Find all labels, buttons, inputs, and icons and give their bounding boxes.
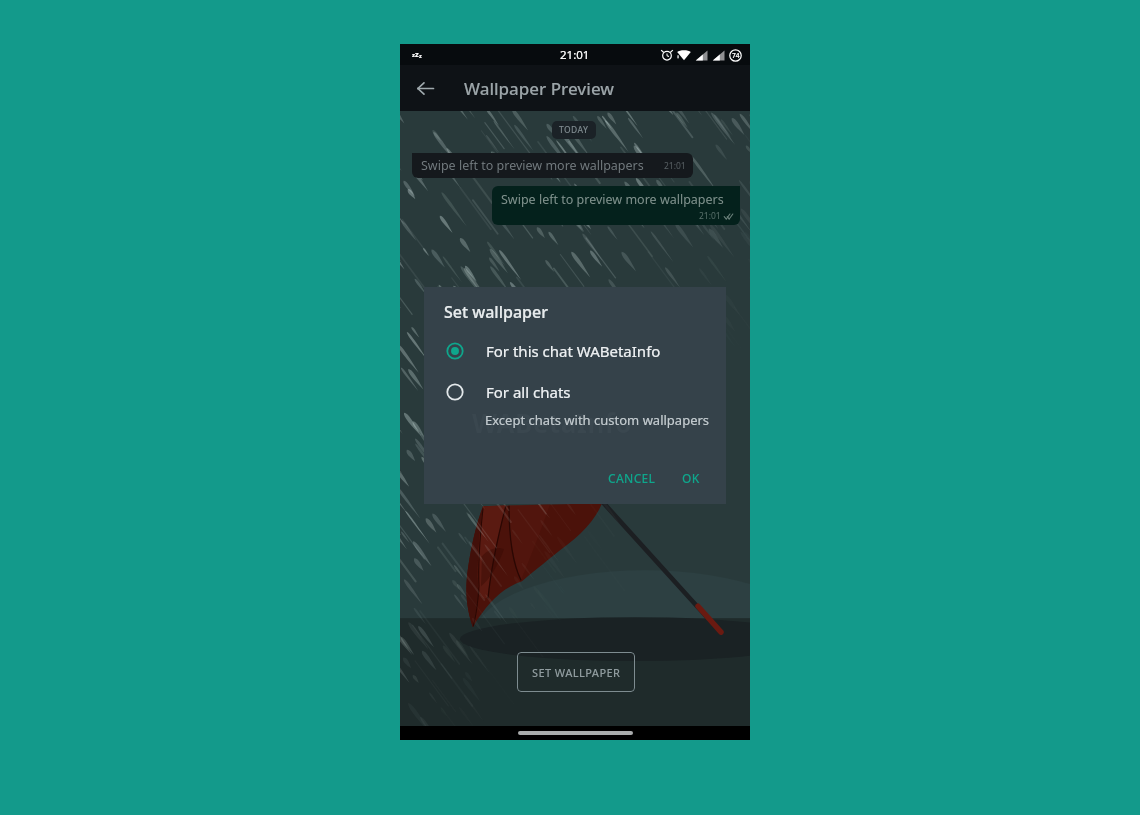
staticText: 74 <box>732 51 740 60</box>
staticText: CANCEL <box>608 470 656 486</box>
staticText: Except chats with custom wallpapers <box>485 411 710 429</box>
staticText: WABetaInfo <box>472 405 633 440</box>
staticText: SET WALLPAPER <box>532 665 621 680</box>
button[interactable]: OK <box>674 465 708 491</box>
staticText: TODAY <box>559 124 589 136</box>
button[interactable]: Back <box>409 72 441 104</box>
staticText: For this chat WABetaInfo <box>486 341 661 361</box>
button[interactable]: For this chat WABetaInfo <box>424 334 726 368</box>
staticText: Wallpaper Preview <box>464 77 615 100</box>
staticText: OK <box>682 470 700 486</box>
button[interactable]: CANCEL <box>600 465 664 491</box>
staticText: z <box>415 49 419 59</box>
staticText: Set wallpaper <box>444 301 548 323</box>
staticText: 21:01 <box>699 210 721 222</box>
button[interactable]: SET WALLPAPER <box>517 652 635 692</box>
staticText: 21:01 <box>560 47 590 63</box>
staticText: z <box>412 51 415 59</box>
staticText: z <box>419 52 422 59</box>
staticText: Swipe left to preview more wallpapers <box>421 157 644 174</box>
staticText: Swipe left to preview more wallpapers <box>501 191 724 208</box>
button[interactable]: For all chats <box>424 375 726 409</box>
staticText: For all chats <box>486 382 571 402</box>
staticText: 21:01 <box>664 160 686 172</box>
